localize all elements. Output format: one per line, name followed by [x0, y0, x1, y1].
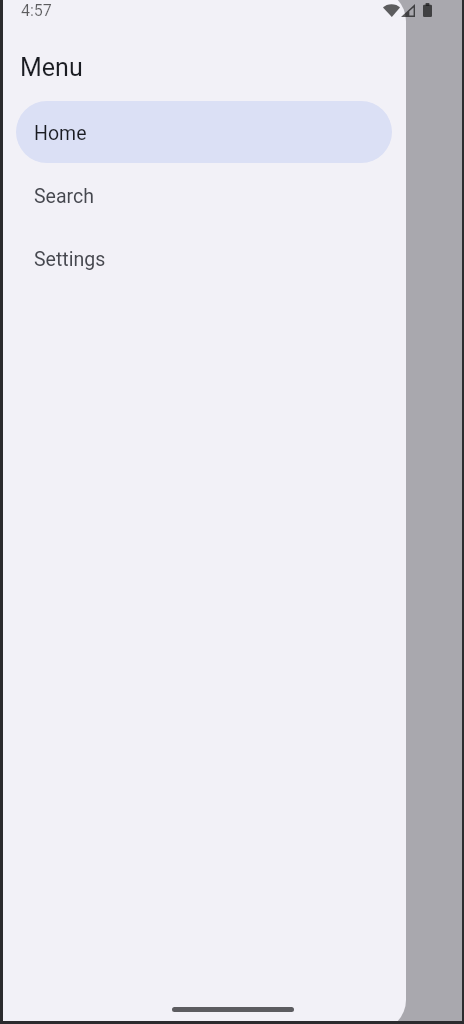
button[interactable]: Search — [16, 164, 392, 226]
button[interactable]: Close navigation drawer — [3, 0, 462, 1021]
staticText: Search — [34, 185, 94, 208]
staticText: Home — [34, 122, 87, 145]
staticText: Menu — [20, 53, 83, 82]
staticText: 4:57 — [21, 1, 52, 20]
button[interactable]: Settings — [16, 227, 392, 289]
staticText: Settings — [34, 248, 106, 271]
button[interactable]: Home — [16, 101, 392, 163]
